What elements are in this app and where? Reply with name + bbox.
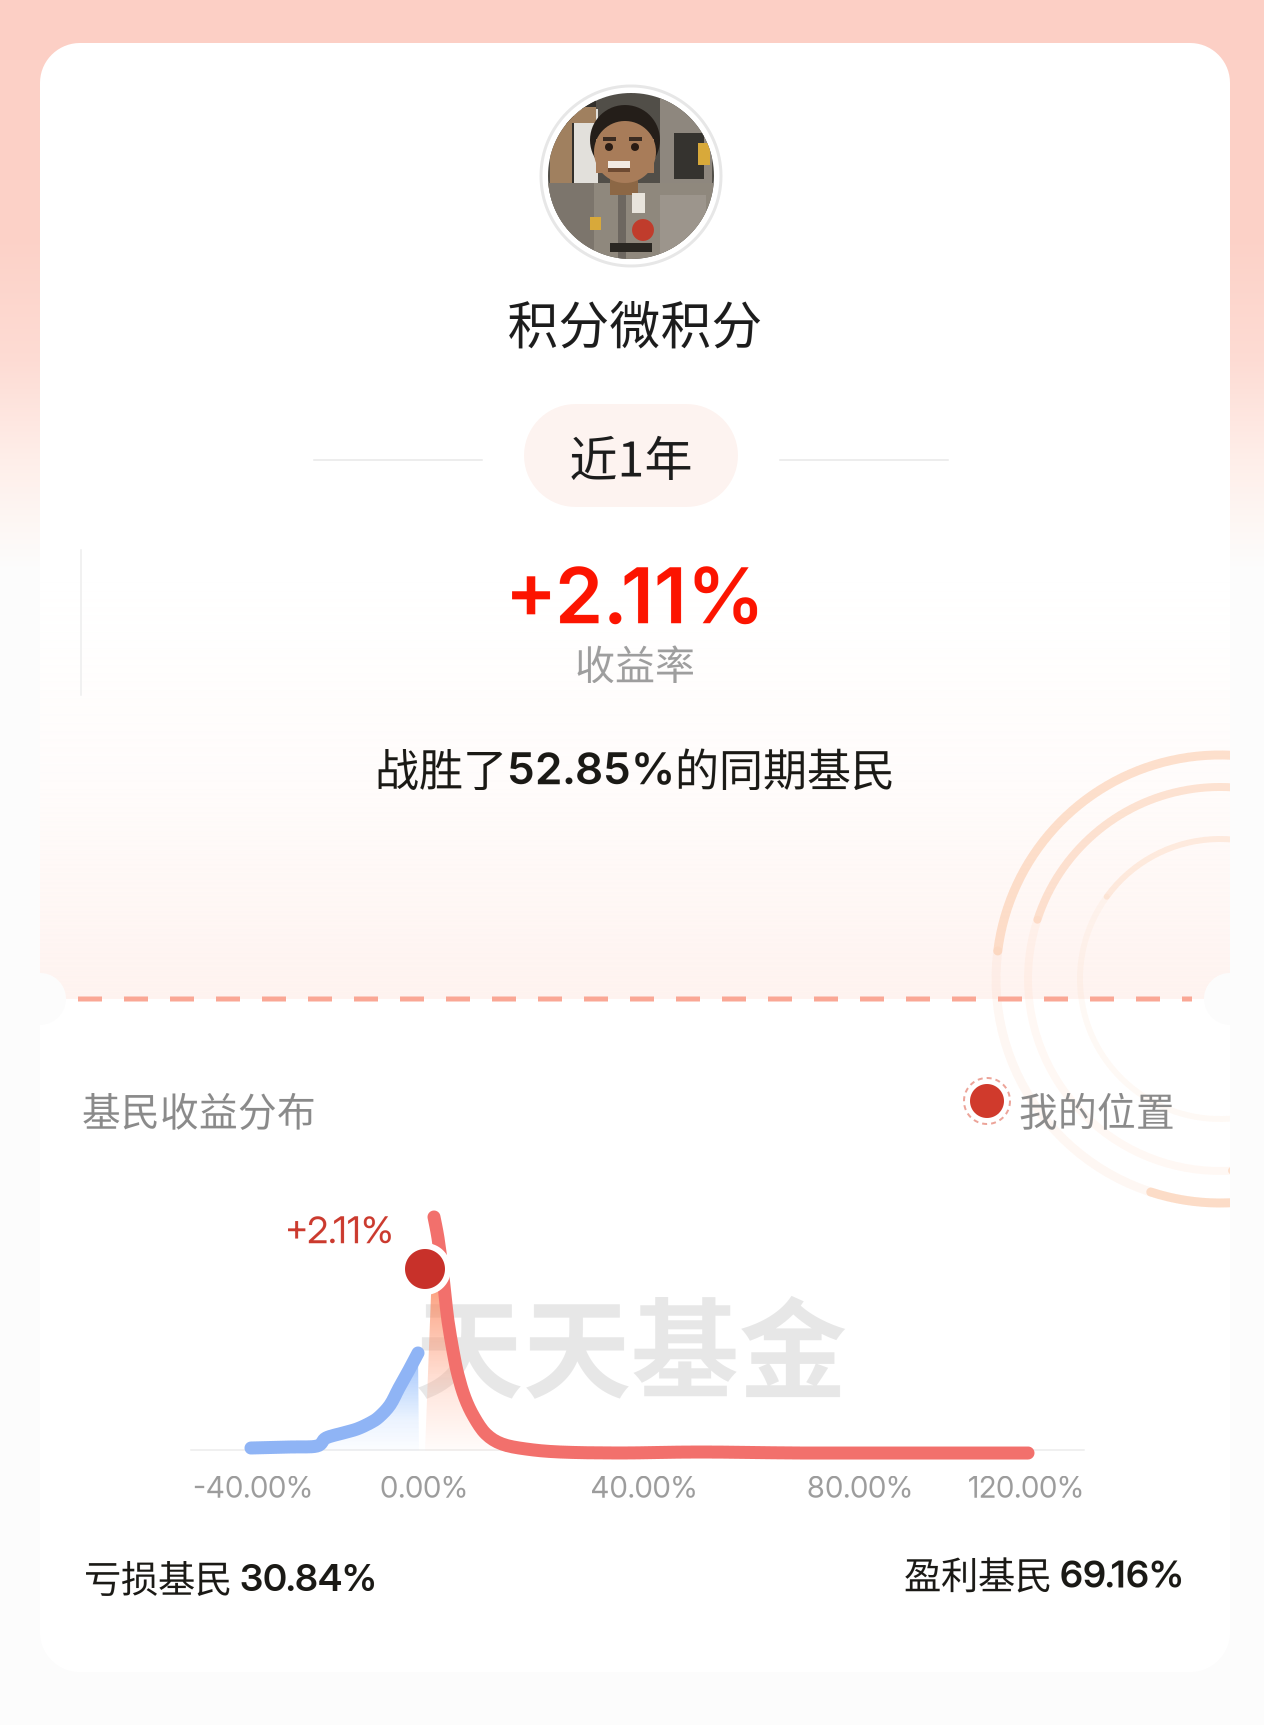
staticText: 120.00% (968, 1469, 1084, 1505)
staticText: 基民收益分布 (82, 1081, 316, 1137)
staticText: +2.11% (505, 548, 765, 642)
staticText: 0.00% (380, 1469, 468, 1505)
staticText: 战胜了52.85%的同期基民 (375, 736, 895, 798)
staticText: 我的位置 (1019, 1081, 1175, 1137)
staticText: +2.11% (285, 1207, 394, 1252)
staticText: -40.00% (193, 1469, 313, 1505)
staticText: 积分微积分 (507, 285, 762, 359)
staticText: 亏损基民 30.84% (84, 1550, 377, 1603)
staticText: 天天基金 (415, 1264, 847, 1420)
staticText: 盈利基民 69.16% (904, 1547, 1184, 1599)
staticText: 近1年 (569, 421, 692, 490)
staticText: 收益率 (575, 633, 695, 691)
staticText: 40.00% (590, 1469, 697, 1505)
button[interactable]: 近1年 (524, 404, 738, 507)
staticText: 80.00% (807, 1469, 913, 1505)
